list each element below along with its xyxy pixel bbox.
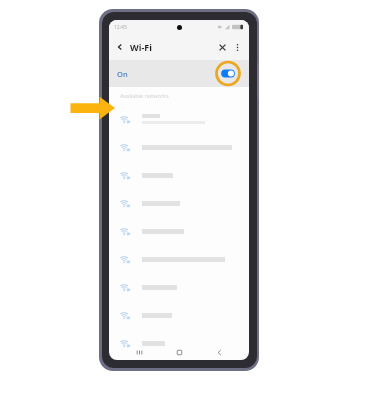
button[interactable]: Scan for networks [215, 40, 230, 55]
button[interactable] [109, 329, 249, 357]
button[interactable]: On [109, 60, 249, 87]
button[interactable] [109, 273, 249, 301]
staticText: Available networks [120, 92, 169, 99]
button[interactable]: Recents [119, 344, 159, 360]
staticText: On [117, 69, 128, 79]
button[interactable]: More options [230, 40, 244, 54]
button[interactable] [109, 301, 249, 329]
button[interactable]: Back [113, 40, 127, 54]
button[interactable] [109, 161, 249, 189]
button[interactable] [109, 245, 249, 273]
button[interactable] [109, 217, 249, 245]
staticText: 12:45 [114, 24, 127, 31]
button[interactable] [109, 133, 249, 161]
button[interactable]: Back [199, 344, 239, 360]
button[interactable] [109, 189, 249, 217]
staticText: Wi-Fi [130, 41, 152, 53]
button[interactable] [109, 105, 249, 133]
button[interactable]: Home [159, 344, 199, 360]
